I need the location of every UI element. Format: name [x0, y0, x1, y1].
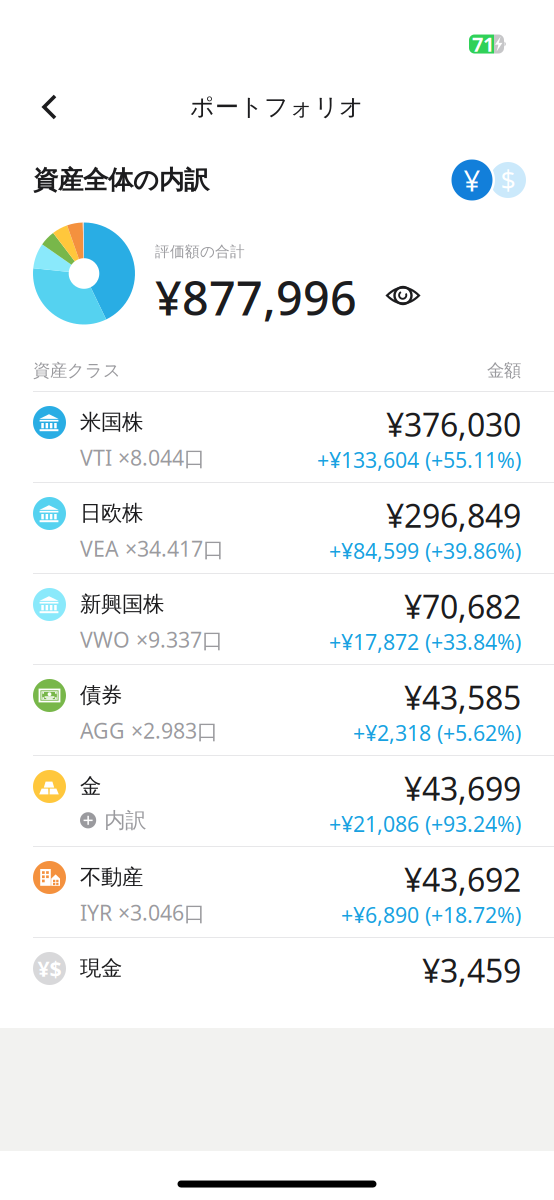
staticText: ¥877,996	[155, 266, 357, 328]
button[interactable]: 不動産	[0, 847, 554, 937]
button[interactable]: Toggle visibility	[357, 274, 430, 317]
staticText: IYR ×3.046口	[80, 898, 205, 927]
staticText: ¥3,459	[422, 949, 521, 991]
staticText: +¥133,604 (+55.11%)	[317, 445, 521, 474]
staticText: ポートフォリオ	[190, 92, 364, 122]
staticText: +¥2,318 (+5.62%)	[353, 718, 521, 747]
staticText: VEA ×34.417口	[80, 534, 224, 563]
button[interactable]: Currency toggle	[449, 157, 526, 203]
button[interactable]: 日欧株	[0, 483, 554, 573]
staticText: AGG ×2.983口	[80, 716, 218, 745]
staticText: ¥70,682	[404, 585, 521, 627]
staticText: 米国株	[80, 409, 143, 435]
staticText: ¥296,849	[386, 494, 521, 536]
staticText: VTI ×8.044口	[80, 443, 205, 472]
staticText: 日欧株	[80, 500, 143, 526]
staticText: 金	[80, 773, 101, 799]
button[interactable]: ¥$	[0, 938, 554, 1028]
staticText: 不動産	[80, 864, 143, 890]
button[interactable]: 金	[0, 756, 554, 846]
staticText: 現金	[80, 955, 122, 981]
staticText: +¥6,890 (+18.72%)	[341, 900, 521, 929]
staticText: ¥$	[37, 954, 61, 983]
staticText: 評価額の合計	[155, 242, 245, 260]
staticText: 内訳	[104, 807, 146, 833]
staticText: +¥21,086 (+93.24%)	[329, 809, 521, 838]
button[interactable]: Back	[26, 81, 84, 133]
staticText: ¥376,030	[386, 403, 521, 445]
staticText: ¥43,585	[404, 676, 521, 718]
staticText: ¥	[463, 160, 480, 199]
staticText: $	[500, 162, 515, 198]
staticText: ¥43,692	[404, 858, 521, 900]
staticText: 資産クラス	[33, 360, 121, 381]
staticText: ¥43,699	[404, 767, 521, 809]
staticText: +¥17,872 (+33.84%)	[329, 627, 521, 656]
button[interactable]: 米国株	[0, 392, 554, 482]
staticText: VWO ×9.337口	[80, 625, 223, 654]
staticText: 金額	[487, 360, 521, 381]
staticText: +¥84,599 (+39.86%)	[329, 536, 521, 565]
staticText: 新興国株	[80, 591, 164, 617]
staticText: 資産全体の内訳	[33, 164, 209, 195]
staticText: 債券	[80, 682, 122, 708]
button[interactable]: 新興国株	[0, 574, 554, 664]
staticText: 71	[472, 31, 494, 57]
button[interactable]: 債券	[0, 665, 554, 755]
